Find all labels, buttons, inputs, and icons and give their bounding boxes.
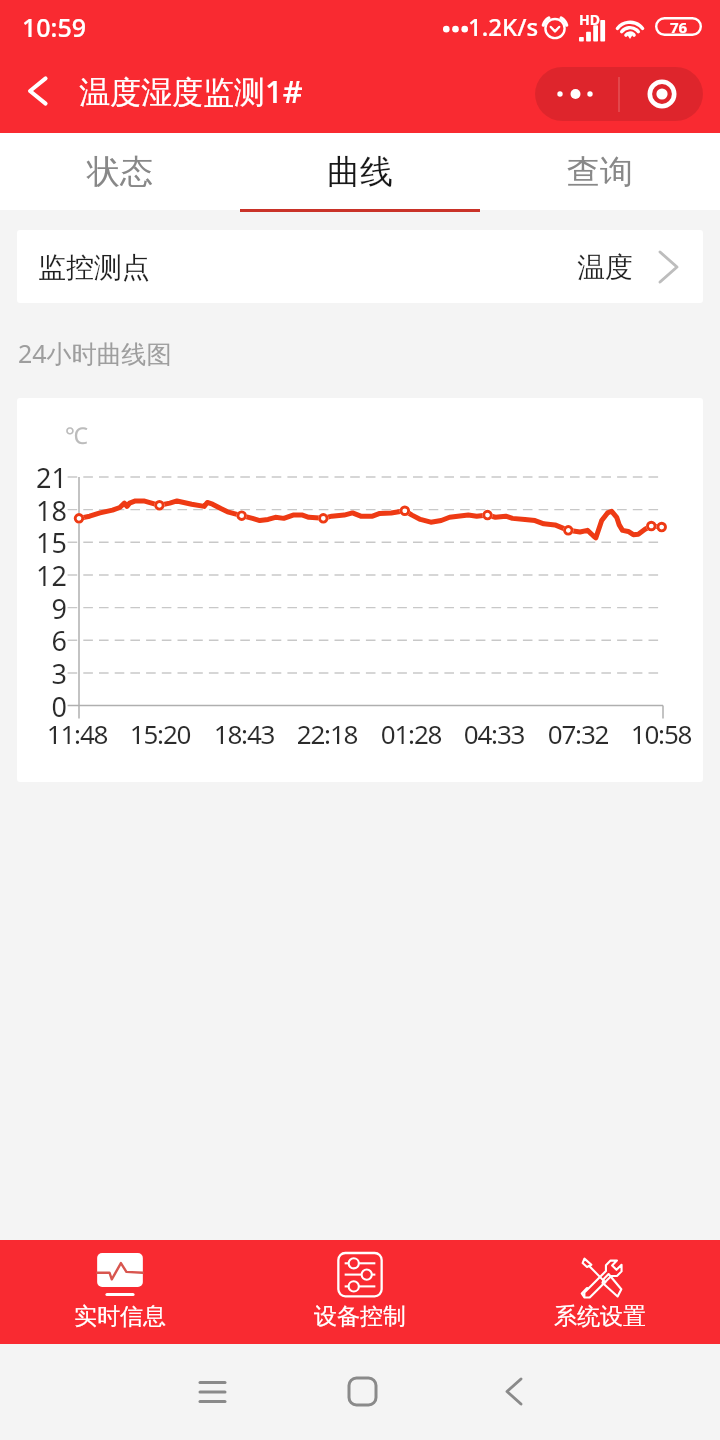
staticText: 01:28 [361, 716, 461, 751]
staticText: 18:43 [194, 716, 294, 751]
button[interactable]: 系统设置 [480, 1240, 720, 1344]
staticText: 3 [25, 655, 67, 692]
staticText: 04:33 [444, 716, 544, 751]
button[interactable]: More options [535, 67, 618, 121]
staticText: 查询 [567, 151, 633, 193]
staticText: 0 [25, 688, 67, 725]
staticText: 15 [25, 524, 67, 561]
button[interactable]: 监控测点 [17, 230, 703, 303]
staticText: 21 [25, 459, 67, 496]
staticText: 监控测点 [38, 250, 150, 285]
button[interactable]: 实时信息 [0, 1240, 240, 1344]
staticText: 设备控制 [314, 1302, 406, 1331]
button[interactable]: Home [326, 1355, 398, 1427]
button[interactable]: Back [478, 1355, 550, 1427]
button[interactable]: 曲线 [240, 133, 480, 210]
button[interactable]: Close app [620, 67, 703, 121]
staticText: 76 [670, 17, 688, 36]
staticText: 曲线 [327, 151, 393, 193]
staticText: 状态 [87, 151, 153, 193]
staticText: 9 [25, 590, 67, 627]
button[interactable]: Recent apps [176, 1356, 248, 1428]
staticText: 12 [25, 557, 67, 594]
staticText: 6 [25, 622, 67, 659]
staticText: 22:18 [277, 716, 377, 751]
button[interactable]: 设备控制 [240, 1240, 480, 1344]
button[interactable]: Back [12, 66, 68, 122]
staticText: 系统设置 [554, 1302, 646, 1331]
staticText: 15:20 [110, 716, 210, 751]
staticText: HD [579, 10, 600, 29]
button[interactable]: 状态 [0, 133, 240, 210]
staticText: 实时信息 [74, 1302, 166, 1331]
staticText: 24小时曲线图 [18, 336, 172, 370]
button[interactable]: 查询 [480, 133, 720, 210]
staticText: 10:59 [22, 10, 87, 44]
staticText: 1.2K/s [468, 10, 539, 43]
staticText: ℃ [65, 419, 88, 450]
staticText: 11:48 [27, 716, 127, 751]
staticText: 温度 [577, 250, 633, 285]
staticText: 温度湿度监测1# [79, 70, 303, 112]
staticText: 18 [25, 492, 67, 529]
staticText: 10:58 [611, 716, 703, 751]
staticText: 07:32 [528, 716, 628, 751]
